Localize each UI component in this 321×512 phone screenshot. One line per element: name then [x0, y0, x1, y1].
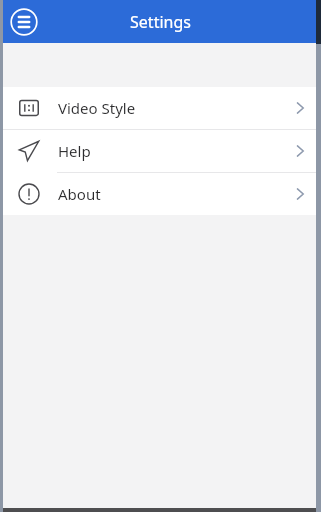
staticText: Video Style — [58, 98, 136, 118]
button[interactable]: Open navigation menu — [8, 6, 40, 38]
button[interactable]: Video Style — [0, 87, 321, 129]
staticText: Help — [58, 141, 91, 161]
staticText: Settings — [130, 11, 191, 33]
staticText: About — [58, 184, 101, 204]
button[interactable]: About — [0, 173, 321, 215]
button[interactable]: Help — [0, 130, 321, 172]
